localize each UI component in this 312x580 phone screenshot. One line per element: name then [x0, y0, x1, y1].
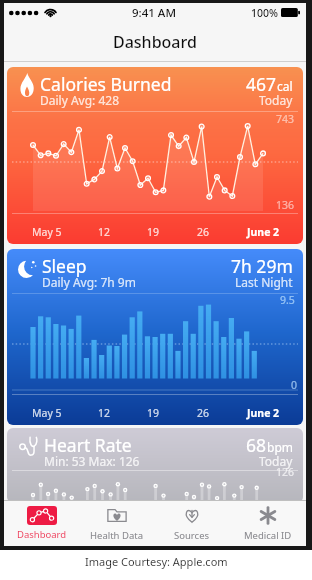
staticText: 26: [197, 225, 210, 239]
staticText: May 5: [32, 406, 62, 420]
staticText: June 2: [247, 406, 280, 420]
staticText: Dashboard: [17, 528, 67, 541]
staticText: 9:41 AM: [132, 5, 176, 21]
button[interactable]: Health Data: [79, 500, 154, 546]
staticText: Daily Avg: 7h 9m: [42, 274, 136, 290]
staticText: 9.5: [280, 293, 295, 307]
staticText: 743: [276, 112, 295, 126]
staticText: 0: [291, 378, 298, 392]
staticText: May 5: [32, 225, 62, 239]
staticText: June 2: [247, 225, 280, 239]
staticText: Sleep: [42, 254, 87, 278]
button[interactable]: Medical ID: [230, 500, 306, 546]
staticText: Today: [259, 92, 293, 108]
staticText: 19: [147, 225, 160, 239]
button[interactable]: Sleep: [7, 249, 303, 425]
staticText: 126: [276, 465, 295, 479]
staticText: 68: [246, 433, 267, 457]
staticText: 19: [147, 406, 160, 420]
staticText: 12: [98, 225, 111, 239]
staticText: Sources: [174, 529, 210, 542]
staticText: Min: 53 Max: 126: [44, 453, 140, 469]
staticText: Calories Burned: [40, 72, 172, 96]
staticText: Image Courtesy: Apple.com: [85, 554, 228, 569]
staticText: Daily Avg: 428: [40, 92, 119, 108]
staticText: 467: [246, 72, 277, 96]
button[interactable]: Heart Rate: [7, 428, 303, 503]
button[interactable]: Sources: [154, 500, 230, 546]
staticText: 7h 29m: [231, 254, 293, 278]
staticText: bpm: [267, 439, 293, 455]
staticText: Last Night: [235, 274, 293, 290]
staticText: Medical ID: [244, 529, 292, 542]
staticText: Health Data: [90, 529, 143, 542]
staticText: 26: [197, 406, 210, 420]
button[interactable]: Dashboard: [4, 500, 79, 546]
staticText: cal: [277, 78, 293, 94]
button[interactable]: Calories Burned: [7, 67, 303, 244]
staticText: 100%: [251, 6, 278, 20]
staticText: Dashboard: [113, 31, 197, 53]
staticText: 136: [276, 198, 295, 212]
staticText: Today: [259, 453, 293, 469]
staticText: Heart Rate: [44, 433, 132, 457]
staticText: 12: [98, 406, 111, 420]
